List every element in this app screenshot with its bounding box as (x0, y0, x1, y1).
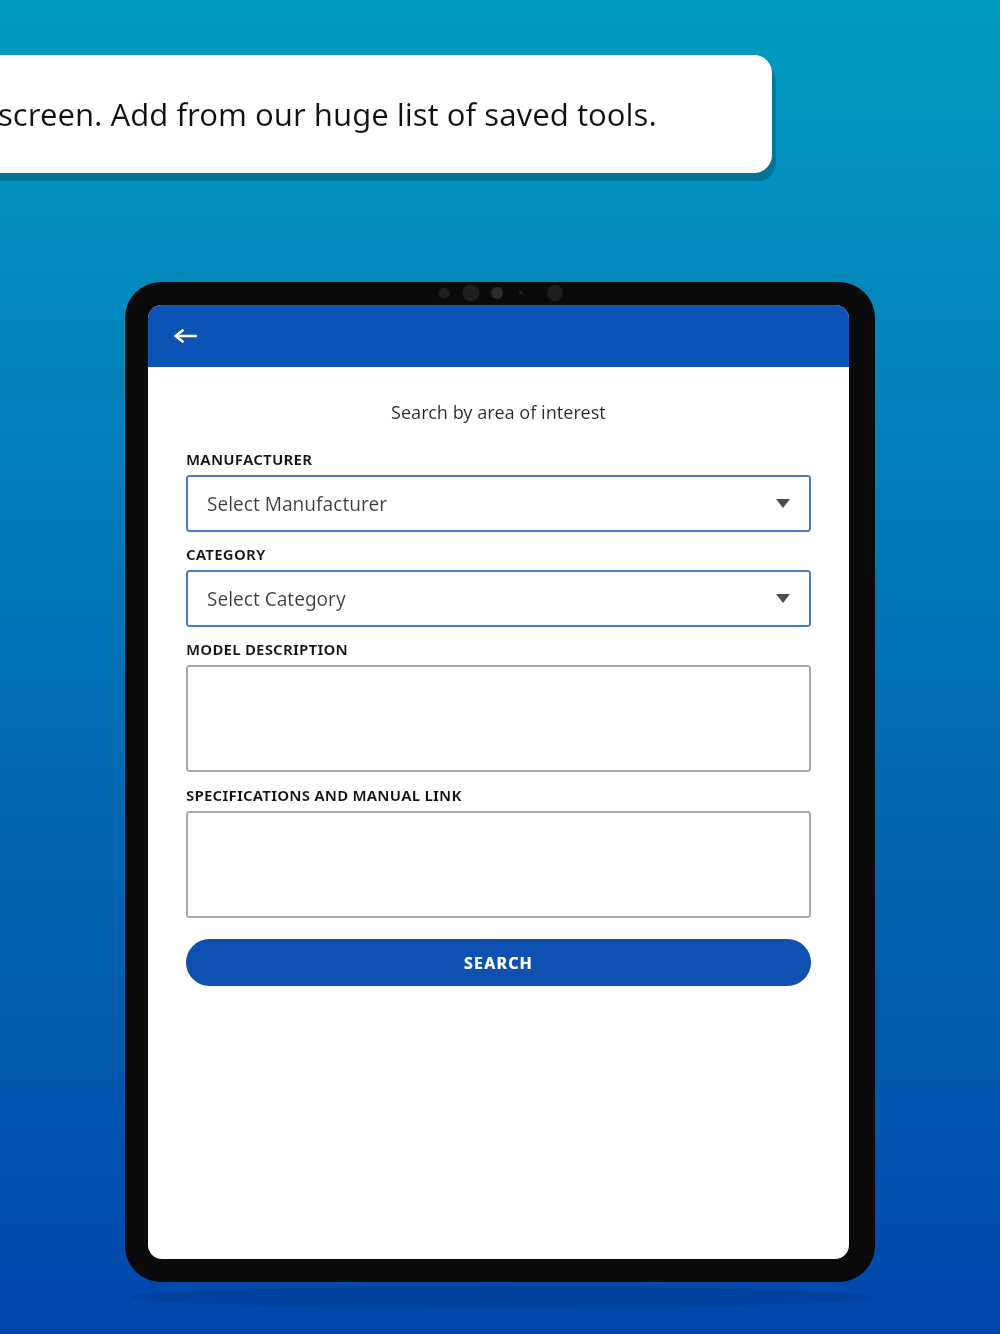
staticText: Search by area of interest (391, 400, 606, 425)
staticText: SEARCH (464, 952, 534, 974)
button[interactable]: Select Category (186, 570, 811, 627)
staticText: MODEL DESCRIPTION (186, 639, 348, 659)
staticText: Select Category (207, 586, 346, 612)
staticText: Select Manufacturer (207, 491, 388, 517)
button[interactable] (186, 811, 811, 918)
staticText: SPECIFICATIONS AND MANUAL LINK (186, 785, 462, 805)
button[interactable]: Select Manufacturer (186, 475, 811, 532)
staticText: screen. Add from our huge list of saved … (0, 93, 657, 135)
staticText: CATEGORY (186, 544, 266, 564)
button[interactable]: SEARCH (186, 939, 811, 986)
button[interactable]: Back (166, 316, 206, 356)
button[interactable] (186, 665, 811, 772)
staticText: MANUFACTURER (186, 449, 313, 469)
